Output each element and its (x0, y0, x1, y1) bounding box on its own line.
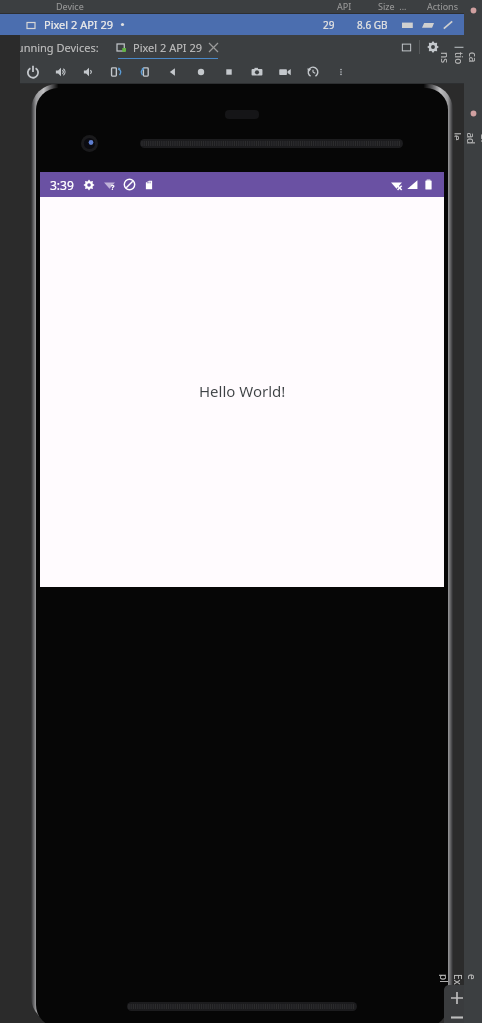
staticText: 29 (323, 18, 335, 32)
button[interactable]: Overview (216, 60, 242, 84)
button[interactable]: Zoom in (444, 985, 470, 1011)
staticText: Gradle (454, 132, 482, 146)
staticText: Notifications (438, 52, 482, 66)
button[interactable]: Volume up (48, 60, 74, 84)
button[interactable]: Power (20, 60, 46, 84)
staticText: Size ... (378, 0, 407, 12)
button[interactable]: Home (188, 60, 214, 84)
button[interactable]: Screenshot (244, 60, 270, 84)
staticText: ? (111, 183, 115, 193)
button[interactable]: Minimize (446, 35, 472, 59)
button[interactable]: Settings (420, 35, 446, 59)
staticText: Hello World! (199, 381, 286, 401)
staticText: Actions (427, 0, 458, 12)
staticText: Pixel 2 API 29 (44, 17, 114, 32)
staticText: Device Expl (439, 974, 482, 988)
button[interactable]: Notifications (464, 6, 482, 99)
button[interactable]: Record screen (272, 60, 298, 84)
button[interactable]: Device Expl (464, 947, 482, 1015)
button[interactable]: History (300, 60, 326, 84)
button[interactable]: Rotate left (104, 60, 130, 84)
button[interactable]: Back (160, 60, 186, 84)
button[interactable]: Gradle (464, 109, 482, 158)
button[interactable]: Window layout (393, 35, 419, 59)
staticText: Pixel 2 API 29 (133, 40, 203, 55)
staticText: API (337, 0, 352, 12)
button[interactable]: Pixel 2 API 29 (0, 14, 482, 35)
button[interactable]: More (328, 60, 354, 84)
staticText: Running Devices: (10, 40, 99, 55)
button[interactable]: Pixel 2 API 29 (113, 38, 222, 57)
button[interactable]: Rotate right (132, 60, 158, 84)
button[interactable]: Volume down (76, 60, 102, 84)
button[interactable]: Zoom out (444, 1011, 470, 1023)
staticText: Device (56, 0, 84, 12)
staticText: 8.6 GB (357, 18, 388, 32)
staticText: 3:39 (50, 177, 74, 193)
